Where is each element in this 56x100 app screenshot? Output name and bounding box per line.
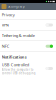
staticText: Settings & p: [8, 5, 25, 8]
button[interactable]: VPN: [0, 20, 56, 30]
button[interactable]: Privacy: [0, 10, 56, 19]
button[interactable]: NFC: [0, 41, 56, 51]
button[interactable]: Tethering & mobile: [0, 30, 56, 40]
staticText: VPN: [2, 22, 9, 28]
staticText: NFC: [2, 44, 10, 49]
staticText: Notifications: [2, 54, 27, 60]
staticText: Tethering & mobile: [2, 33, 35, 38]
staticText: Allow the computer to control USB debugg…: [2, 68, 36, 75]
staticText: USB Controlled: [2, 62, 29, 67]
button[interactable]: USB Controlled: [0, 62, 56, 75]
staticText: Privacy: [2, 12, 15, 17]
